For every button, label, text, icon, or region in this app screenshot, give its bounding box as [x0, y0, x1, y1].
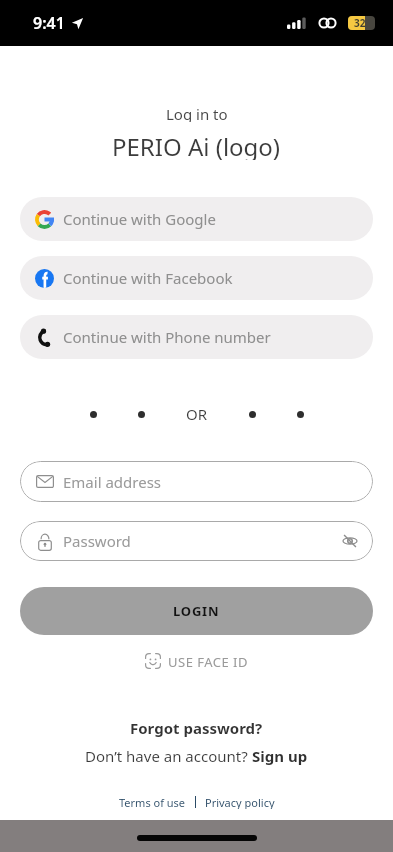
- staticText: Password: [63, 531, 131, 551]
- staticText: Sign up: [252, 746, 308, 765]
- button[interactable]: Email address: [20, 461, 373, 502]
- staticText: 32: [354, 16, 366, 30]
- staticText: Continue with Google: [63, 209, 216, 229]
- button[interactable]: Continue with Google: [20, 197, 373, 241]
- staticText: Don’t have an account?: [85, 746, 252, 765]
- button[interactable]: [342, 534, 358, 548]
- staticText: Continue with Phone number: [63, 327, 271, 347]
- button[interactable]: Continue with Phone number: [20, 315, 373, 359]
- button[interactable]: LOGIN: [20, 587, 373, 635]
- staticText: Email address: [63, 472, 162, 492]
- staticText: LOGIN: [173, 602, 220, 620]
- button[interactable]: USE FACE ID: [145, 653, 249, 669]
- button[interactable]: Terms of use: [119, 795, 186, 809]
- staticText: 9:41: [33, 12, 65, 34]
- staticText: Terms of use: [119, 795, 186, 809]
- button[interactable]: Continue with Facebook: [20, 256, 373, 300]
- staticText: Forgot password?: [130, 718, 263, 737]
- staticText: PERIO Ai (logo): [112, 130, 281, 160]
- button[interactable]: Privacy policy: [205, 795, 275, 809]
- button[interactable]: Forgot password?: [130, 718, 263, 737]
- staticText: OR: [186, 404, 208, 424]
- button[interactable]: Sign up: [252, 746, 308, 765]
- staticText: Privacy policy: [205, 795, 275, 809]
- staticText: Log in to: [166, 104, 228, 122]
- button[interactable]: Password: [20, 521, 373, 561]
- staticText: Continue with Facebook: [63, 268, 233, 288]
- staticText: USE FACE ID: [168, 653, 249, 669]
